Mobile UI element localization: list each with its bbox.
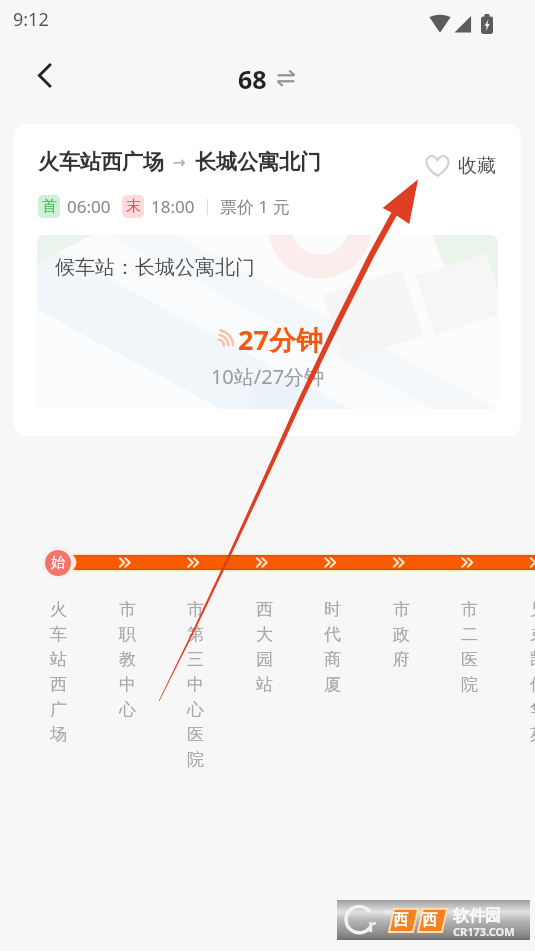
staticText: r xyxy=(368,913,377,938)
staticText: 市 xyxy=(187,599,204,624)
staticText: 市 xyxy=(393,599,410,624)
staticText: 收藏 xyxy=(458,154,496,178)
staticText: 西 xyxy=(393,911,408,930)
staticText: 软件园 xyxy=(453,906,501,926)
staticText: 第 xyxy=(187,624,204,649)
button[interactable]: 兄 xyxy=(504,599,535,749)
staticText: 二 xyxy=(461,624,478,649)
staticText: 车 xyxy=(50,624,67,649)
staticText: 职 xyxy=(119,624,136,649)
staticText: 苑 xyxy=(530,724,535,749)
staticText: 信 xyxy=(530,674,535,699)
button[interactable]: Switch direction xyxy=(277,67,295,92)
button[interactable]: 火车站西广场 xyxy=(14,124,521,436)
staticText: 始 xyxy=(51,554,65,572)
staticText: 候车站：长城公寓北门 xyxy=(55,255,255,280)
staticText: 三 xyxy=(187,649,204,674)
button[interactable]: 西 xyxy=(230,599,299,699)
staticText: 大 xyxy=(256,624,273,649)
staticText: 代 xyxy=(324,624,341,649)
button[interactable]: 市 xyxy=(93,599,162,724)
staticText: 06:00 xyxy=(67,195,111,218)
staticText: 10站/27分钟 xyxy=(37,363,498,390)
staticText: 68 xyxy=(238,62,267,96)
staticText: 医 xyxy=(461,649,478,674)
staticText: 弟 xyxy=(530,624,535,649)
staticText: 教 xyxy=(119,649,136,674)
staticText: 政 xyxy=(393,624,410,649)
button[interactable]: 火 xyxy=(24,599,93,749)
button[interactable]: 市 xyxy=(161,599,230,774)
staticText: 心 xyxy=(119,699,136,724)
staticText: → xyxy=(164,151,195,173)
button[interactable]: 收藏 xyxy=(424,153,496,179)
staticText: CR173.COM xyxy=(453,924,515,939)
staticText: 火车站西广场 xyxy=(38,149,164,175)
staticText: 站 xyxy=(256,674,273,699)
staticText: 医 xyxy=(187,724,204,749)
staticText: 厦 xyxy=(324,674,341,699)
staticText: 西 xyxy=(422,911,437,930)
staticText: 9:12 xyxy=(13,7,49,32)
staticText: 站 xyxy=(50,649,67,674)
staticText: 火 xyxy=(50,599,67,624)
button[interactable]: Back xyxy=(21,57,61,97)
staticText: 场 xyxy=(50,724,67,749)
staticText: 心 xyxy=(187,699,204,724)
staticText: 商 xyxy=(324,649,341,674)
button[interactable]: 始 xyxy=(45,550,71,576)
staticText: 西 xyxy=(50,674,67,699)
staticText: 园 xyxy=(256,649,273,674)
staticText: 院 xyxy=(461,674,478,699)
staticText: 末 xyxy=(126,197,141,216)
staticText: 时 xyxy=(324,599,341,624)
staticText: 27分钟 xyxy=(238,321,323,358)
staticText: 西 xyxy=(256,599,273,624)
staticText: 票价 1 元 xyxy=(220,195,290,218)
staticText: 市 xyxy=(461,599,478,624)
staticText: 府 xyxy=(393,649,410,674)
staticText: 18:00 xyxy=(151,195,195,218)
staticText: 院 xyxy=(187,749,204,774)
staticText: 华 xyxy=(530,699,535,724)
button[interactable]: 市 xyxy=(435,599,504,699)
button[interactable]: 市 xyxy=(367,599,436,674)
staticText: 长城公寓北门 xyxy=(195,149,321,175)
button[interactable]: 时 xyxy=(298,599,367,699)
staticText: 广 xyxy=(50,699,67,724)
staticText: 市 xyxy=(119,599,136,624)
staticText: 中 xyxy=(119,674,136,699)
staticText: 首 xyxy=(42,197,57,216)
staticText: 凯 xyxy=(530,649,535,674)
staticText: 中 xyxy=(187,674,204,699)
staticText: 兄 xyxy=(530,599,535,624)
